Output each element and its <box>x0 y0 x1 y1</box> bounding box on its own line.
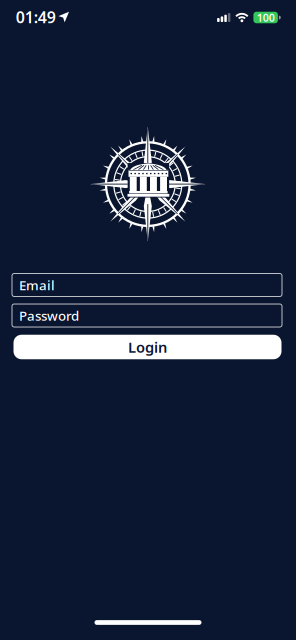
button[interactable]: Password <box>12 304 282 327</box>
staticText: Login <box>128 337 167 357</box>
button[interactable]: Login <box>13 335 281 359</box>
staticText: 01:49 <box>16 6 56 28</box>
staticText: Password <box>19 307 79 324</box>
button[interactable]: Email <box>12 273 282 296</box>
staticText: Email <box>19 276 55 294</box>
staticText: 100 <box>257 10 275 25</box>
